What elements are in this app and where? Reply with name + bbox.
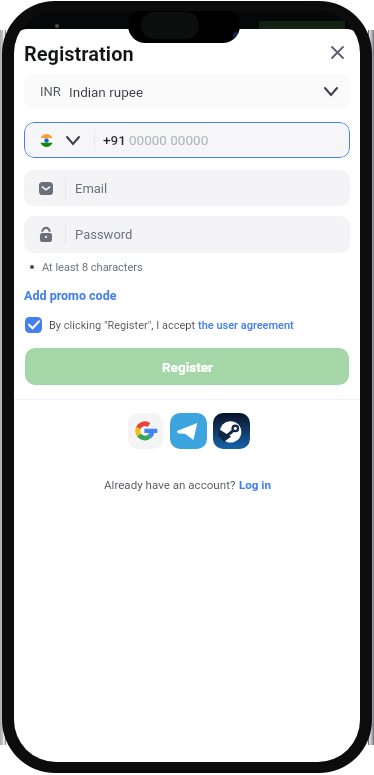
staticText: Indian rupee <box>69 84 144 100</box>
staticText: +91 <box>103 132 126 148</box>
button[interactable]: Sign in with Steam <box>213 413 250 449</box>
button[interactable]: Add promo code <box>22 286 119 305</box>
button[interactable]: Password <box>24 216 350 253</box>
button[interactable]: Close <box>320 35 354 69</box>
staticText: Password <box>75 227 133 242</box>
button[interactable]: Sign in with Google <box>128 413 163 449</box>
button[interactable]: Register <box>25 348 349 385</box>
staticText: the user agreement <box>198 319 294 332</box>
staticText: By clicking "Register", I accept <box>49 319 198 332</box>
staticText: Add promo code <box>24 288 117 303</box>
staticText: Register <box>162 359 213 375</box>
staticText: 00000 00000 <box>129 132 209 148</box>
button[interactable]: Email <box>24 170 350 206</box>
button[interactable]: Log in <box>239 478 271 492</box>
staticText: At least 8 characters <box>42 261 143 274</box>
button[interactable]: +91 <box>24 122 350 158</box>
staticText: Log in <box>239 478 271 492</box>
staticText: Email <box>75 181 108 196</box>
staticText: Already have an account? <box>104 478 239 492</box>
button[interactable]: Sign in with Telegram <box>170 413 207 449</box>
staticText: Registration <box>24 42 134 65</box>
button[interactable]: INR <box>24 74 350 109</box>
staticText: INR <box>40 84 61 99</box>
button[interactable]: By clicking "Register", I accept <box>14 314 360 336</box>
